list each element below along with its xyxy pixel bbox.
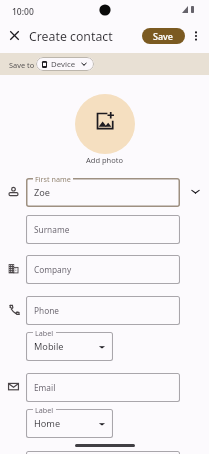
staticText: Phone [34, 305, 59, 316]
staticText: Mobile [34, 340, 64, 353]
staticText: Save to [9, 60, 35, 70]
staticText: 10:00 [12, 6, 34, 18]
button[interactable]: Phone [26, 296, 180, 325]
button[interactable]: Email [26, 373, 180, 402]
staticText: Surname [34, 224, 70, 235]
button[interactable]: Home [26, 409, 113, 438]
staticText: Add photo [86, 155, 123, 165]
button[interactable]: More options [188, 28, 204, 44]
staticText: Device [51, 59, 76, 70]
button[interactable]: Save [142, 28, 185, 44]
staticText: Zoe [34, 186, 50, 199]
staticText: First name [35, 174, 71, 184]
button[interactable]: Close [6, 27, 23, 44]
button[interactable]: Company [26, 255, 180, 284]
button[interactable]: Expand name fields [188, 184, 203, 199]
staticText: Home [34, 417, 61, 430]
button[interactable]: Add photo [75, 94, 135, 154]
button[interactable]: Device [36, 57, 94, 71]
staticText: Save [153, 30, 174, 42]
button[interactable] [26, 451, 180, 454]
staticText: Company [34, 264, 72, 275]
staticText: Label [35, 405, 54, 415]
staticText: Create contact [29, 28, 113, 45]
button[interactable]: Surname [26, 215, 180, 244]
button[interactable]: Zoe [26, 178, 180, 207]
button[interactable]: Mobile [26, 332, 113, 361]
staticText: Label [35, 328, 54, 338]
staticText: Email [34, 382, 56, 393]
